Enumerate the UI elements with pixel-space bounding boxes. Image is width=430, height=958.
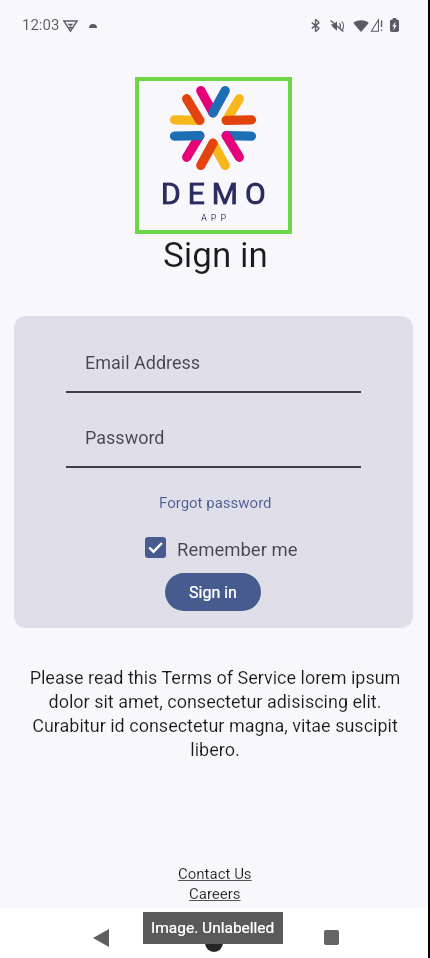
button[interactable]: Sign in: [165, 573, 261, 611]
staticText: Password: [85, 427, 165, 448]
button[interactable]: Recent apps: [311, 917, 352, 958]
button[interactable]: Home: [193, 922, 234, 958]
staticText: Sign in: [189, 583, 237, 602]
staticText: Forgot password: [159, 494, 272, 512]
staticText: Please read this Terms of Service lorem …: [29, 667, 401, 760]
button[interactable]: Back: [80, 917, 121, 958]
staticText: Remember me: [177, 539, 298, 561]
staticText: Image. Unlabelled: [151, 919, 275, 937]
button[interactable]: Remember me: [145, 536, 298, 558]
staticText: Sign in: [163, 235, 268, 276]
staticText: Email Address: [85, 352, 201, 373]
staticText: DEMO: [161, 176, 273, 211]
button[interactable]: Forgot password: [14, 494, 413, 512]
staticText: APP: [201, 213, 231, 224]
button[interactable]: Contact Us: [178, 865, 252, 883]
staticText: 12:03: [22, 16, 60, 34]
button[interactable]: Careers: [189, 885, 241, 903]
